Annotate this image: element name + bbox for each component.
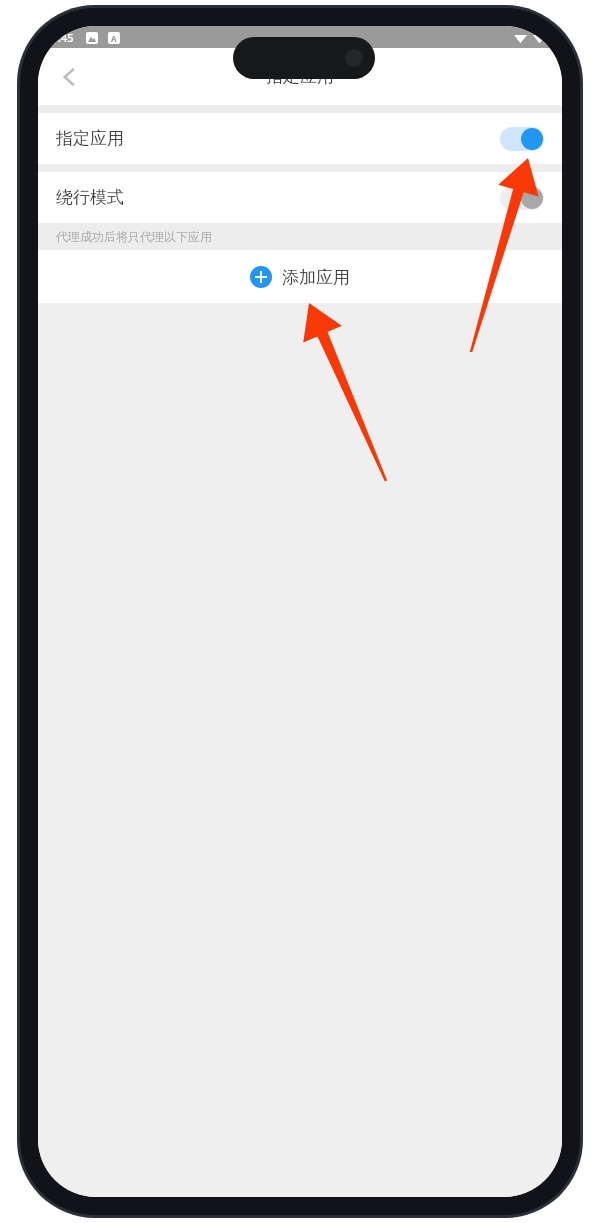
- staticText: 添加应用: [282, 267, 350, 288]
- staticText: 指定应用: [266, 66, 334, 87]
- button[interactable]: On: [500, 127, 544, 151]
- staticText: 绕行模式: [56, 187, 124, 208]
- button[interactable]: 指定应用: [38, 113, 562, 164]
- button[interactable]: Off: [500, 186, 544, 210]
- button[interactable]: 绕行模式: [38, 172, 562, 223]
- staticText: :45: [58, 30, 74, 45]
- staticText: A: [111, 33, 117, 44]
- button[interactable]: 添加应用: [38, 250, 562, 303]
- staticText: 指定应用: [56, 128, 124, 149]
- staticText: 代理成功后将只代理以下应用: [56, 229, 212, 244]
- button[interactable]: Back: [46, 53, 94, 101]
